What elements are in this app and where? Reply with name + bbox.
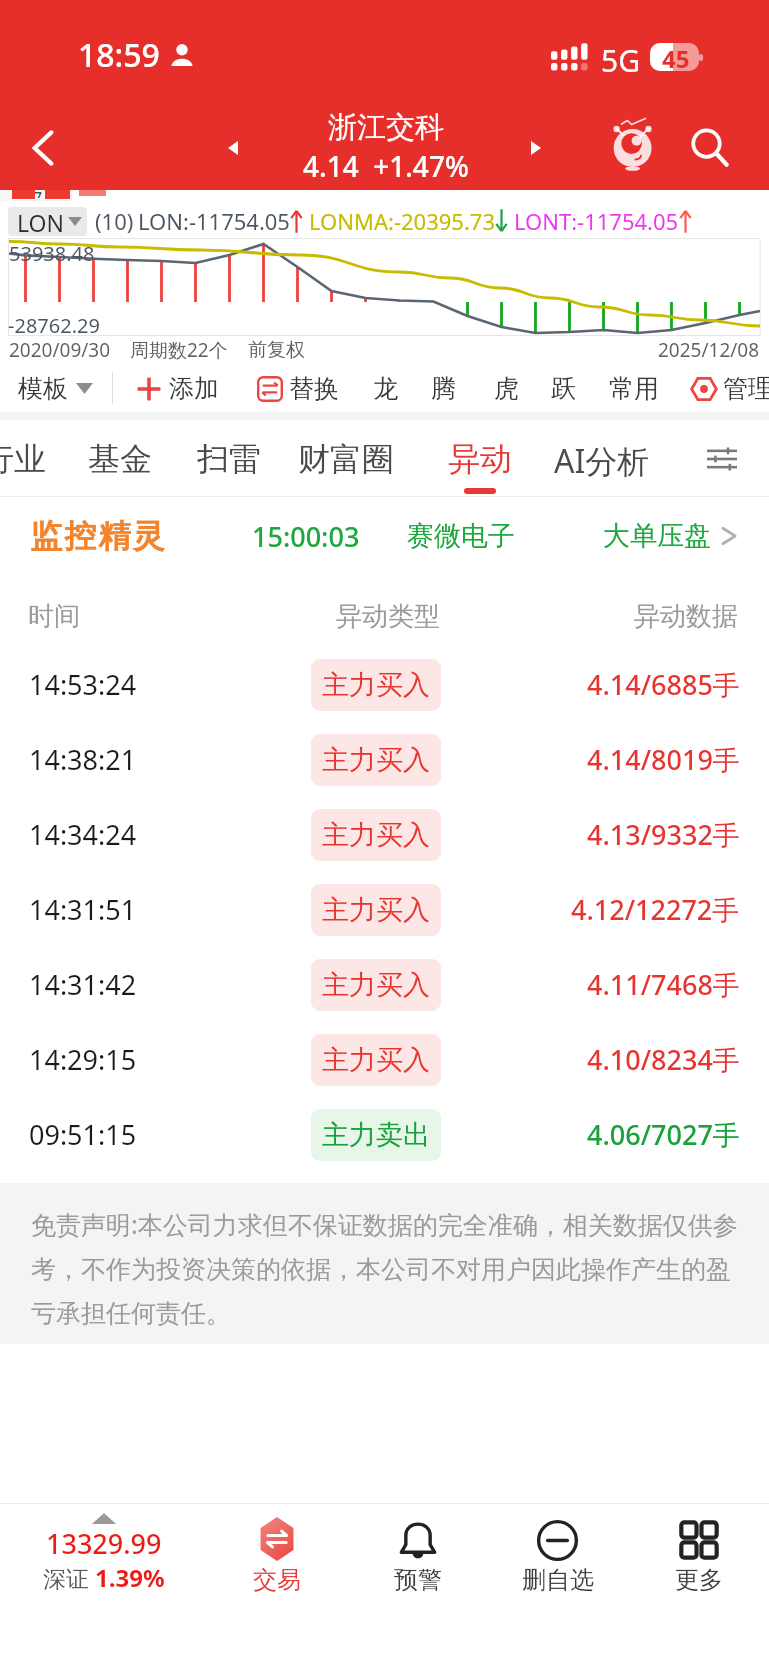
staticText: LON:-11754.05	[138, 206, 290, 236]
button[interactable]: 13329.99	[0, 1503, 206, 1665]
staticText: 更多	[675, 1565, 723, 1595]
staticText: 5G	[601, 40, 640, 81]
staticText: 主力买入	[322, 893, 430, 927]
staticText: 免责声明:本公司力求但不保证数据的完全准确，相关数据仅供参考，不作为投资决策的依…	[31, 1207, 753, 1329]
staticText: 赛微电子	[407, 519, 515, 553]
staticText: 主力买入	[322, 818, 430, 852]
staticText: 监控精灵	[30, 516, 167, 556]
staticText: LONMA:-20395.73	[309, 206, 495, 236]
staticText: 45	[662, 43, 690, 70]
staticText: 模板	[18, 373, 68, 404]
button[interactable]: 扫雷	[185, 420, 273, 497]
staticText: LON	[17, 207, 65, 236]
staticText: 15:00:03	[252, 518, 360, 555]
staticText: 浙江交科	[328, 109, 444, 146]
button[interactable]: 添加	[136, 373, 219, 404]
button[interactable]: 管理	[690, 373, 769, 404]
staticText: 主力卖出	[322, 1118, 430, 1152]
button[interactable]: Search	[680, 118, 740, 178]
button[interactable]: 虎	[494, 373, 519, 404]
button[interactable]: 09:51:15	[0, 1097, 769, 1172]
staticText: 4.06/7027手	[587, 1116, 740, 1153]
staticText: LONT:-11754.05	[514, 206, 679, 236]
button[interactable]: 预警	[347, 1503, 488, 1665]
staticText: 主力买入	[322, 968, 430, 1002]
staticText: 09:51:15	[29, 1116, 137, 1153]
staticText: 大单压盘	[603, 519, 711, 553]
staticText: 18:59	[78, 33, 160, 77]
button[interactable]: 财富圈	[280, 420, 412, 497]
button[interactable]: 14:38:21	[0, 722, 769, 797]
button[interactable]: AI分析	[550, 420, 654, 497]
button[interactable]: 14:34:24	[0, 797, 769, 872]
staticText: 4.12/12272手	[571, 891, 740, 928]
button[interactable]: Next stock	[510, 122, 562, 174]
staticText: 4.10/8234手	[587, 1041, 740, 1078]
button[interactable]: 基金	[76, 420, 164, 497]
staticText: 4.14/6885手	[587, 666, 740, 703]
staticText: 扫雷	[197, 439, 261, 479]
staticText: 异动数据	[634, 600, 738, 633]
button[interactable]: Assistant	[602, 111, 662, 183]
button[interactable]: 14:29:15	[0, 1022, 769, 1097]
staticText: 主力买入	[322, 668, 430, 702]
staticText: 14:29:15	[29, 1041, 137, 1078]
staticText: 14:38:21	[29, 741, 137, 778]
staticText: -28762.29	[8, 312, 100, 339]
staticText: 行业	[0, 439, 46, 479]
button[interactable]: Filter	[696, 433, 748, 485]
button[interactable]: 腾	[431, 373, 456, 404]
staticText: 财富圈	[298, 439, 394, 479]
staticText: 周期数22个	[130, 337, 228, 363]
staticText: 时间	[28, 600, 80, 633]
staticText: 删自选	[522, 1565, 594, 1595]
staticText: 主力买入	[322, 743, 430, 777]
button[interactable]: Previous stock	[207, 122, 259, 174]
button[interactable]: Back	[12, 117, 74, 179]
button[interactable]: 监控精灵	[0, 497, 769, 575]
staticText: 14:53:24	[29, 666, 137, 703]
staticText: 53938.48	[9, 240, 95, 267]
staticText: 深证	[43, 1562, 95, 1593]
button[interactable]: 交易	[206, 1503, 347, 1665]
button[interactable]: 删自选	[487, 1503, 628, 1665]
staticText: 2020/09/30	[9, 337, 111, 363]
staticText: 前复权	[248, 338, 305, 362]
button[interactable]: 异动	[436, 420, 524, 497]
staticText: 14:34:24	[29, 816, 137, 853]
button[interactable]: 14:31:42	[0, 947, 769, 1022]
staticText: (10)	[95, 206, 134, 236]
button[interactable]: LON	[8, 207, 87, 236]
button[interactable]: 更多	[628, 1503, 769, 1665]
button[interactable]: 替换	[257, 373, 339, 404]
staticText: 异动	[448, 439, 512, 479]
button[interactable]: 常用	[609, 373, 659, 404]
staticText: 13329.99	[46, 1525, 162, 1562]
staticText: 替换	[289, 373, 339, 404]
staticText: 添加	[169, 373, 219, 404]
button[interactable]: 龙	[373, 373, 398, 404]
button[interactable]: 行业	[0, 420, 58, 497]
staticText: 管理	[723, 373, 769, 404]
staticText: 14:31:42	[29, 966, 137, 1003]
staticText: 4.14 +1.47%	[303, 147, 469, 185]
staticText: 预警	[394, 1565, 442, 1595]
staticText: 4.14/8019手	[587, 741, 740, 778]
staticText: AI分析	[554, 439, 650, 483]
staticText: 基金	[88, 439, 152, 479]
button[interactable]: 模板	[18, 373, 93, 404]
button[interactable]: 14:53:24	[0, 647, 769, 722]
staticText: 交易	[253, 1565, 301, 1595]
staticText: 4.13/9332手	[587, 816, 740, 853]
button[interactable]: 14:31:51	[0, 872, 769, 947]
button[interactable]: 跃	[551, 373, 576, 404]
staticText: 1.39%	[95, 1561, 165, 1594]
staticText: 异动类型	[336, 600, 440, 633]
staticText: 主力买入	[322, 1043, 430, 1077]
staticText: 14:31:51	[29, 891, 137, 928]
staticText: 4.11/7468手	[587, 966, 740, 1003]
staticText: +27.12	[8, 185, 71, 198]
staticText: 2025/12/08	[658, 337, 760, 363]
